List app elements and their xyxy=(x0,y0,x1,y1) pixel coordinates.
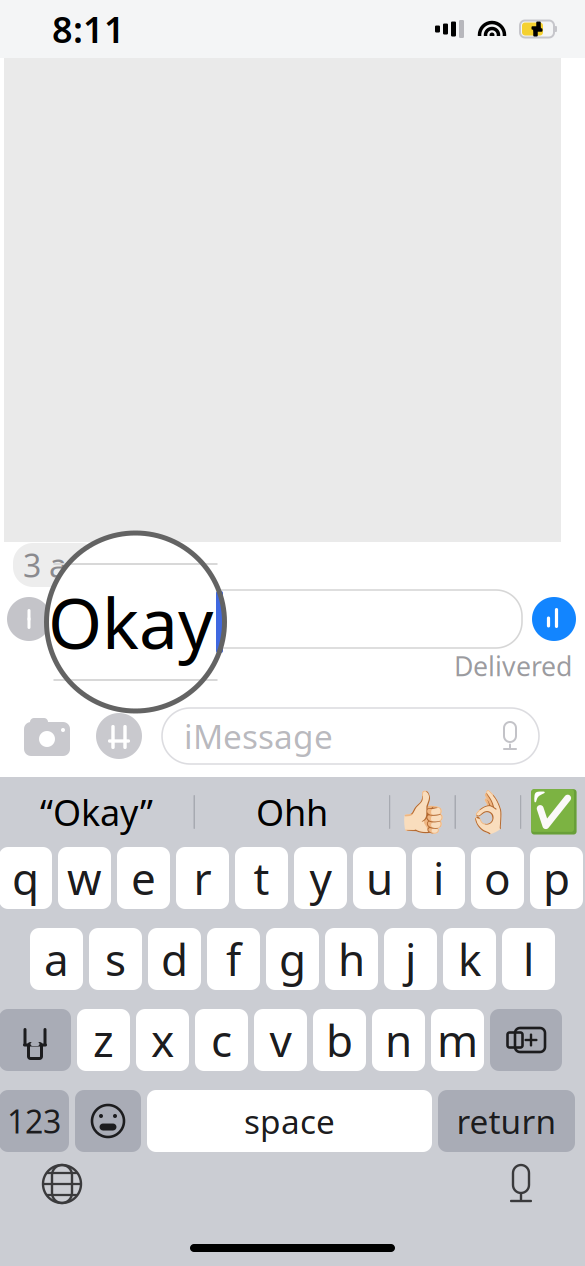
button[interactable]: Emoji xyxy=(75,1090,141,1152)
staticText: e xyxy=(131,849,156,907)
button[interactable]: 👍🏻 xyxy=(390,787,454,837)
button[interactable]: space xyxy=(147,1090,432,1152)
button[interactable]: q xyxy=(0,847,52,909)
button[interactable]: Apps xyxy=(92,709,146,763)
button[interactable]: l xyxy=(502,928,555,990)
staticText: Okay xyxy=(48,576,213,668)
staticText: w xyxy=(67,849,102,907)
staticText: m xyxy=(437,1011,478,1069)
button[interactable]: w xyxy=(58,847,111,909)
staticText: q xyxy=(12,849,39,907)
staticText: l xyxy=(523,930,534,988)
button[interactable]: b xyxy=(313,1009,366,1071)
staticText: k xyxy=(458,930,481,988)
staticText: u xyxy=(366,849,393,907)
staticText: Ohh xyxy=(256,788,328,836)
staticText: s xyxy=(105,930,126,988)
button[interactable]: v xyxy=(254,1009,307,1071)
button[interactable]: n xyxy=(372,1009,425,1071)
staticText: j xyxy=(405,930,416,988)
button[interactable]: f xyxy=(207,928,260,990)
button[interactable]: Camera xyxy=(20,709,74,763)
button[interactable]: Delivered xyxy=(532,597,576,641)
staticText: f xyxy=(226,930,241,988)
button[interactable]: Dictation xyxy=(495,1158,547,1210)
button[interactable]: e xyxy=(117,847,170,909)
staticText: n xyxy=(385,1011,412,1069)
button[interactable]: d xyxy=(148,928,201,990)
staticText: 3 a xyxy=(23,544,67,586)
staticText: 8:11 xyxy=(52,5,125,53)
button[interactable]: g xyxy=(266,928,319,990)
button[interactable]: r xyxy=(176,847,229,909)
button[interactable]: y xyxy=(294,847,347,909)
button[interactable]: m xyxy=(431,1009,484,1071)
button[interactable]: Next keyboard xyxy=(36,1158,88,1210)
staticText: a xyxy=(44,930,69,988)
button[interactable]: iMessage xyxy=(162,708,539,764)
staticText: 👌🏻 xyxy=(462,788,513,836)
staticText: space xyxy=(244,1099,335,1143)
staticText: i xyxy=(433,849,444,907)
button[interactable]: 👌🏻 xyxy=(456,787,520,837)
staticText: b xyxy=(326,1011,353,1069)
staticText: y xyxy=(309,849,331,907)
staticText: d xyxy=(161,930,188,988)
staticText: z xyxy=(93,1011,114,1069)
staticText: p xyxy=(543,849,570,907)
staticText: “Okay” xyxy=(40,788,153,836)
button[interactable]: Ohh xyxy=(195,787,389,837)
button[interactable]: x xyxy=(136,1009,189,1071)
staticText: v xyxy=(269,1011,291,1069)
button[interactable]: j xyxy=(384,928,437,990)
button[interactable]: o xyxy=(471,847,524,909)
staticText: return xyxy=(456,1099,556,1143)
staticText: iMessage xyxy=(184,714,333,758)
button[interactable]: Shift xyxy=(0,1009,71,1071)
staticText: c xyxy=(211,1011,232,1069)
button[interactable]: 123 xyxy=(0,1090,69,1152)
staticText: x xyxy=(151,1011,174,1069)
button[interactable]: k xyxy=(443,928,496,990)
button[interactable]: “Okay” xyxy=(0,787,193,837)
staticText: 👍🏻 xyxy=(397,788,448,836)
staticText: r xyxy=(193,849,211,907)
button[interactable]: ✅ xyxy=(521,787,585,837)
button[interactable]: i xyxy=(412,847,465,909)
staticText: g xyxy=(279,930,306,988)
staticText: o xyxy=(484,849,511,907)
staticText: 123 xyxy=(7,1100,61,1142)
button[interactable]: Delete xyxy=(490,1009,562,1071)
staticText: h xyxy=(338,930,365,988)
button[interactable]: a xyxy=(30,928,83,990)
button[interactable]: u xyxy=(353,847,406,909)
button[interactable]: h xyxy=(325,928,378,990)
staticText: t xyxy=(253,849,269,907)
staticText: Delivered xyxy=(454,648,572,684)
button[interactable]: return xyxy=(438,1090,575,1152)
staticText: ✅ xyxy=(528,788,579,836)
button[interactable]: c xyxy=(195,1009,248,1071)
button[interactable]: p xyxy=(530,847,583,909)
button[interactable]: t xyxy=(235,847,288,909)
button[interactable]: z xyxy=(77,1009,130,1071)
button[interactable]: s xyxy=(89,928,142,990)
